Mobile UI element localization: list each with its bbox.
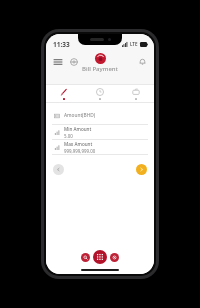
button[interactable]: Close — [110, 253, 119, 262]
button[interactable] — [46, 85, 82, 102]
button[interactable]: Max Amount — [52, 140, 148, 154]
button[interactable] — [82, 85, 118, 102]
staticText: Amount(BHD) — [64, 112, 96, 119]
button[interactable]: Apps — [93, 250, 107, 264]
staticText: Min Amount — [64, 126, 92, 132]
button[interactable]: Amount(BHD) — [52, 110, 148, 121]
button[interactable]: Accessibility — [67, 55, 80, 68]
button[interactable]: Menu — [51, 55, 64, 68]
staticText: 5.00 — [64, 133, 73, 139]
staticText: Bill Payment — [82, 65, 118, 73]
staticText: 999,999,999.00 — [64, 148, 96, 154]
button[interactable]: Previous — [53, 164, 64, 175]
button[interactable]: Notifications — [136, 55, 149, 68]
button[interactable]: Min Amount — [52, 125, 148, 139]
staticText: 11:33 — [53, 40, 70, 49]
staticText: Max Amount — [64, 141, 93, 147]
button[interactable]: Next — [136, 164, 147, 175]
button[interactable] — [118, 85, 154, 102]
staticText: LTE — [130, 41, 138, 47]
button[interactable]: Search — [81, 253, 90, 262]
